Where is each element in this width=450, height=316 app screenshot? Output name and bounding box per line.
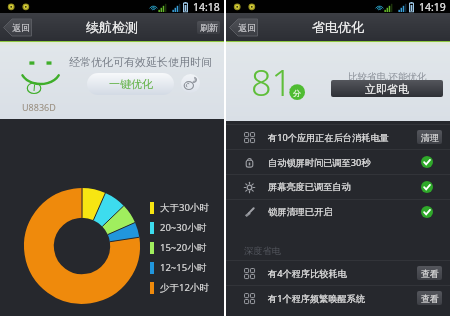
staticText: 立即省电: [365, 82, 409, 96]
button[interactable]: 锁屏清理已开启: [226, 200, 450, 224]
staticText: 大于30小时: [160, 201, 209, 214]
staticText: 81: [251, 58, 293, 107]
button[interactable]: 屏幕亮度已调至自动: [226, 175, 450, 199]
button[interactable]: 有1个程序频繁唤醒系统: [226, 286, 450, 310]
staticText: 14:19: [419, 0, 446, 13]
staticText: 返回: [12, 22, 30, 33]
staticText: 有4个程序比较耗电: [268, 267, 347, 280]
staticText: 分: [293, 88, 301, 98]
staticText: 查看: [421, 268, 439, 279]
staticText: 刷新: [200, 22, 218, 33]
staticText: 20~30小时: [160, 221, 207, 234]
button[interactable]: 返回: [229, 19, 259, 36]
staticText: 省电优化: [312, 19, 364, 35]
button[interactable]: 查看: [417, 266, 442, 280]
staticText: 有10个应用正在后台消耗电量: [268, 131, 389, 144]
staticText: 清理: [421, 132, 439, 143]
button[interactable]: 立即省电: [331, 80, 443, 97]
button[interactable]: 自动锁屏时间已调至30秒: [226, 150, 450, 174]
button[interactable]: 查看: [417, 291, 442, 305]
staticText: 自动锁屏时间已调至30秒: [268, 156, 371, 169]
staticText: U8836D: [22, 101, 58, 113]
button[interactable]: 有10个应用正在后台消耗电量: [226, 125, 450, 149]
staticText: 12~15小时: [160, 261, 207, 274]
staticText: 15~20小时: [160, 241, 207, 254]
button[interactable]: 刷新: [197, 21, 220, 34]
staticText: 14:18: [193, 0, 220, 13]
staticText: 比较省电,还能优化: [348, 70, 427, 83]
button[interactable]: 返回: [3, 19, 33, 36]
staticText: 续航检测: [86, 19, 138, 35]
staticText: 锁屏清理已开启: [268, 206, 333, 218]
staticText: 查看: [421, 293, 439, 304]
staticText: 经常优化可有效延长使用时间: [69, 55, 212, 69]
staticText: 有1个程序频繁唤醒系统: [268, 292, 366, 305]
button[interactable]: 清理: [417, 130, 442, 144]
staticText: 屏幕亮度已调至自动: [268, 181, 351, 193]
staticText: 返回: [238, 22, 256, 33]
button[interactable]: 一键优化: [87, 73, 174, 95]
staticText: 一键优化: [109, 77, 153, 91]
button[interactable]: 有4个程序比较耗电: [226, 261, 450, 285]
staticText: 少于12小时: [160, 281, 209, 294]
button[interactable]: Weibo: [181, 74, 200, 93]
staticText: 深度省电: [244, 245, 281, 257]
